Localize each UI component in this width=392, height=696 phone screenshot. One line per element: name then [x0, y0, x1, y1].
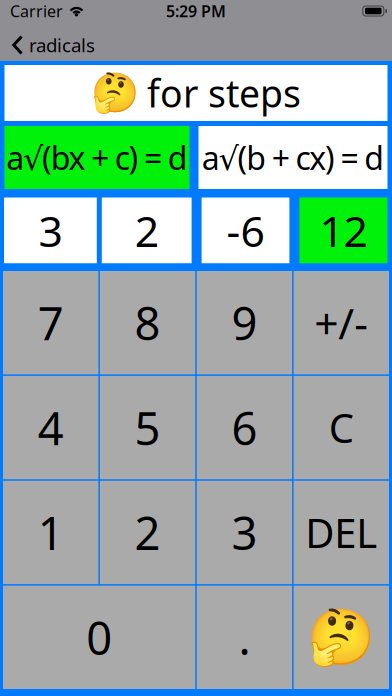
staticText: a√(b + cx) = d: [202, 136, 384, 179]
staticText: a√(bx + c) = d: [6, 136, 188, 179]
button[interactable]: C: [294, 376, 389, 479]
button[interactable]: 12: [299, 197, 387, 263]
staticText: 0: [86, 607, 112, 667]
button[interactable]: +/-: [294, 271, 389, 374]
button[interactable]: 2: [102, 197, 192, 263]
staticText: -6: [226, 202, 264, 259]
staticText: 9: [231, 293, 257, 353]
button[interactable]: DEL: [294, 481, 389, 584]
staticText: 3: [231, 502, 257, 562]
button[interactable]: 3: [4, 197, 97, 263]
button[interactable]: a√(b + cx) = d: [198, 126, 387, 189]
staticText: .: [238, 607, 250, 667]
button[interactable]: 4: [3, 376, 98, 479]
staticText: 3: [38, 202, 62, 259]
staticText: 🤔: [91, 71, 139, 115]
staticText: 5:29 PM: [166, 0, 226, 22]
button[interactable]: 7: [3, 271, 98, 374]
staticText: DEL: [305, 506, 377, 559]
staticText: radicals: [29, 33, 95, 57]
staticText: 2: [135, 202, 159, 259]
staticText: 2: [135, 502, 161, 562]
button[interactable]: Back: [0, 33, 95, 57]
button[interactable]: 🤔: [4, 65, 387, 121]
staticText: 6: [231, 397, 257, 458]
staticText: for steps: [147, 68, 301, 118]
button[interactable]: .: [197, 586, 292, 689]
staticText: 12: [319, 202, 367, 259]
button[interactable]: 6: [197, 376, 292, 479]
staticText: 1: [38, 502, 64, 562]
button[interactable]: Show steps: [294, 586, 389, 689]
staticText: 🤔: [307, 606, 375, 669]
button[interactable]: 0: [3, 586, 195, 689]
button[interactable]: 5: [100, 376, 195, 479]
staticText: Carrier: [10, 0, 63, 22]
staticText: C: [329, 401, 354, 454]
staticText: +/-: [314, 294, 368, 351]
button[interactable]: a√(bx + c) = d: [4, 126, 189, 189]
button[interactable]: 8: [100, 271, 195, 374]
button[interactable]: 2: [100, 481, 195, 584]
button[interactable]: -6: [202, 197, 289, 263]
button[interactable]: 9: [197, 271, 292, 374]
staticText: 5: [135, 397, 161, 458]
staticText: 7: [38, 293, 64, 353]
button[interactable]: 3: [197, 481, 292, 584]
staticText: 8: [135, 293, 161, 353]
button[interactable]: 1: [3, 481, 98, 584]
staticText: 4: [38, 397, 64, 458]
